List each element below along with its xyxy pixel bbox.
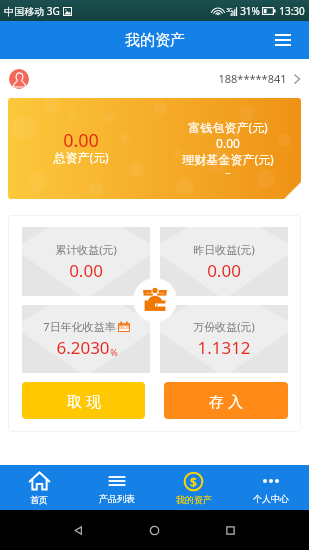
button[interactable]: 累计收益(元) (22, 227, 150, 296)
button[interactable]: 取 现 (22, 382, 145, 419)
other: Back (72, 524, 85, 537)
staticText: 总资产(元) (53, 149, 109, 165)
staticText: 我的资产 (176, 494, 212, 505)
staticText: 万份收益(元) (193, 319, 255, 334)
staticText: 我的资产 (125, 31, 185, 50)
staticText: 产品列表 (99, 493, 135, 504)
staticText: 首页 (30, 494, 48, 505)
staticText: 6.2030 (56, 336, 110, 359)
staticText: 7日年化收益率 (43, 319, 116, 334)
staticText: 09-26 (119, 325, 130, 330)
staticText: 存 入 (209, 391, 243, 411)
staticText: -- (225, 167, 231, 178)
staticText: 理财基金资产(元) (182, 151, 274, 167)
staticText: 0.00 (63, 128, 99, 153)
staticText: $ (190, 474, 197, 490)
button[interactable]: 个人中心 (232, 465, 309, 510)
other: Recents (224, 524, 237, 537)
staticText: 取 现 (67, 391, 101, 411)
staticText: 0.00 (69, 259, 103, 282)
button[interactable]: 存 入 (164, 382, 288, 419)
staticText: 188*****841 (218, 71, 287, 86)
staticText: 13:30 (279, 4, 305, 18)
button[interactable]: 昨日收益(元) (160, 227, 288, 296)
staticText: 0.00 (216, 135, 240, 151)
staticText: 31% (240, 4, 260, 18)
staticText: 富钱包资产(元) (188, 119, 268, 135)
button[interactable]: 万份收益(元) (160, 305, 288, 373)
staticText: 中国移动 3G (4, 4, 60, 18)
staticText: % (110, 346, 118, 358)
staticText: 累计收益(元) (55, 242, 117, 257)
other: Home (148, 524, 161, 537)
button[interactable]: 首页 (0, 465, 78, 510)
staticText: 个人中心 (253, 493, 289, 504)
button[interactable]: 7日年化收益率 (22, 305, 150, 373)
staticText: 3G (226, 7, 233, 14)
button[interactable]: 188*****841 (0, 59, 309, 98)
staticText: 0.00 (207, 259, 241, 282)
button[interactable]: 产品列表 (78, 465, 155, 510)
button[interactable]: Menu (257, 21, 309, 59)
staticText: 昨日收益(元) (193, 242, 255, 257)
staticText: 1.1312 (197, 336, 251, 359)
button[interactable]: $ (155, 465, 232, 510)
